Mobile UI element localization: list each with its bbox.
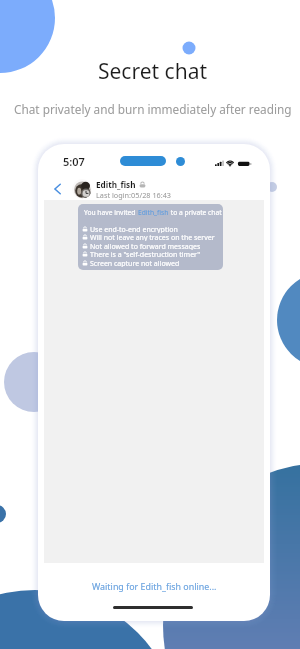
staticText: There is a "self-destruction timer" <box>90 250 201 258</box>
button[interactable]: Back <box>38 174 270 202</box>
staticText: Screen capture not allowed <box>90 259 180 267</box>
staticText: Use end-to-end encryption <box>90 225 178 233</box>
staticText: Chat privately and burn immediately afte… <box>14 101 292 117</box>
staticText: Will not leave any traces on the server <box>90 233 215 241</box>
button[interactable]: Waiting for Edith_fish online... <box>92 580 217 592</box>
staticText: Secret chat <box>98 57 208 86</box>
staticText: You have invited <box>84 208 138 217</box>
staticText: 5:07 <box>63 154 85 169</box>
staticText: to a private chat <box>169 208 222 217</box>
button[interactable]: Back <box>51 182 65 196</box>
staticText: Edith_fish <box>96 179 136 190</box>
staticText: Not allowed to forward messages <box>90 242 201 250</box>
staticText: Edith_fish <box>138 208 169 217</box>
staticText: Last login:05/28 16:43 <box>96 190 172 200</box>
